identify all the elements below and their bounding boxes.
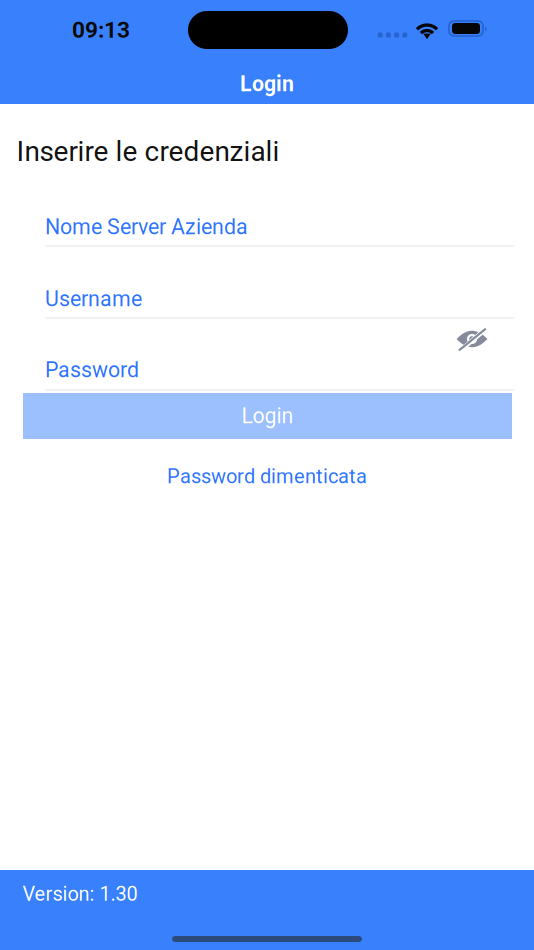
staticText: Login [240,71,294,96]
staticText: Nome Server Azienda [45,214,248,239]
button[interactable]: Login [23,393,512,439]
button[interactable]: Username [45,282,514,316]
button[interactable]: Nome Server Azienda [45,210,514,244]
staticText: Version: 1.30 [22,882,137,906]
staticText: Inserire le credenziali [16,135,279,168]
staticText: Password dimenticata [167,465,367,488]
staticText: 09:13 [72,17,130,43]
staticText: Username [45,286,142,311]
staticText: Login [241,403,293,428]
button[interactable]: Password [45,353,514,387]
button[interactable]: Password dimenticata [160,458,374,495]
button[interactable]: Show password [447,319,497,359]
staticText: Password [45,357,139,382]
